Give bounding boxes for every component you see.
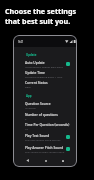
staticText: 5: [25, 117, 27, 120]
staticText: Update Time: [25, 71, 45, 75]
staticText: that best suit you.: [5, 16, 71, 26]
staticText: Currently updating every 1 hour: [25, 75, 63, 78]
button[interactable]: Play Test Sound: [14, 134, 76, 143]
staticText: Time Per Question (seconds): [25, 123, 70, 127]
staticText: Play test sounds using various: [25, 138, 61, 141]
button[interactable]: Back: [23, 156, 32, 165]
staticText: Question Source: [25, 102, 51, 106]
button[interactable]: Recents: [58, 156, 67, 165]
staticText: Number of questions: [25, 113, 58, 117]
staticText: All words: [25, 106, 36, 109]
button[interactable]: Number of questions: [14, 113, 76, 122]
staticText: Automatically update daily word: [25, 65, 63, 68]
staticText: Play sound on every answer pitch: [25, 150, 65, 153]
button[interactable]: Update Time: [14, 71, 76, 80]
button[interactable]: Auto Update: [14, 61, 76, 70]
button[interactable]: Toggle Play Test Sound: [66, 135, 70, 139]
staticText: 9:41: [18, 40, 24, 44]
staticText: Choose the settings: [5, 6, 77, 16]
staticText: Current Status: [25, 81, 48, 85]
staticText: 10: [25, 127, 28, 130]
button[interactable]: Current Status: [14, 81, 76, 90]
button[interactable]: Home: [41, 156, 50, 165]
staticText: Daily: [25, 85, 31, 88]
staticText: Play Answer Pitch Sound: [25, 146, 64, 150]
button[interactable]: Play Answer Pitch Sound: [14, 146, 76, 155]
staticText: Auto Update: [25, 61, 45, 65]
button[interactable]: Time Per Question (seconds): [14, 123, 76, 132]
staticText: Play Test Sound: [25, 134, 50, 138]
button[interactable]: Toggle Play Answer Pitch Sound: [66, 147, 70, 151]
staticText: Update: [26, 53, 37, 57]
button[interactable]: Toggle Auto Update: [66, 62, 70, 66]
button[interactable]: Question Source: [14, 102, 76, 111]
staticText: App: [26, 94, 32, 98]
